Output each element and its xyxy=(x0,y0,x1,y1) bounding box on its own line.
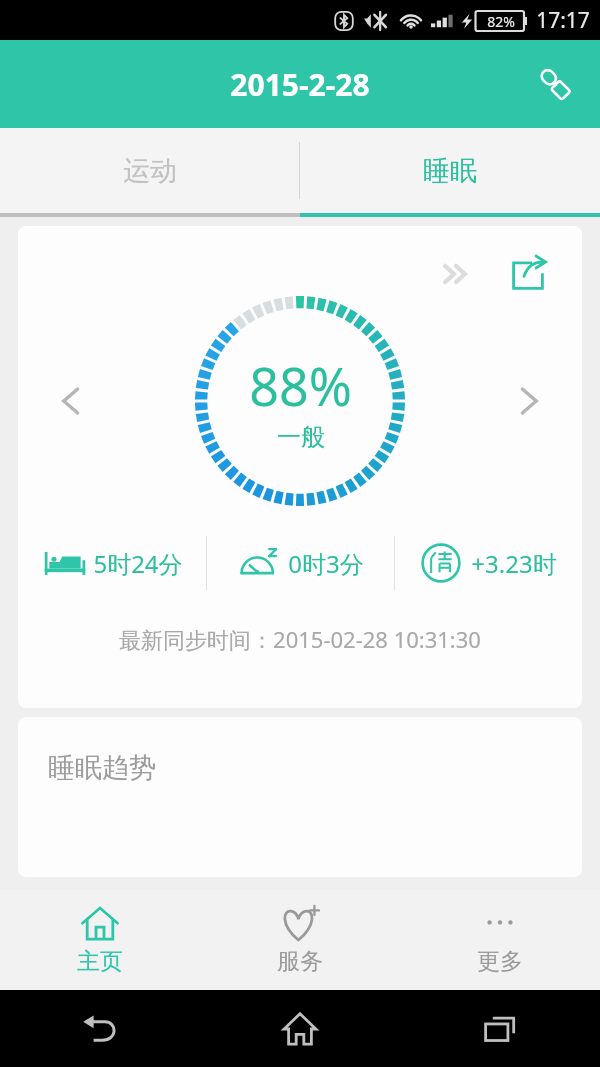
staticText: 88% xyxy=(249,350,352,421)
staticText: 17:17 xyxy=(536,6,590,35)
button[interactable]: 主页 xyxy=(0,890,200,990)
button[interactable]: 更多 xyxy=(400,890,600,990)
button[interactable]: More details xyxy=(428,246,484,302)
staticText: 运动 xyxy=(123,154,177,188)
button[interactable]: Previous day xyxy=(42,372,100,430)
button[interactable]: +3.23时 xyxy=(395,524,582,602)
staticText: 更多 xyxy=(477,947,523,976)
staticText: 一般 xyxy=(277,422,325,452)
button[interactable]: 睡眠趋势 xyxy=(18,717,582,877)
staticText: +3.23时 xyxy=(471,547,557,580)
staticText: 服务 xyxy=(277,947,323,976)
button[interactable]: 服务 xyxy=(200,890,400,990)
button[interactable]: 运动 xyxy=(0,128,299,213)
staticText: 睡眠 xyxy=(423,154,477,188)
staticText: 主页 xyxy=(77,947,123,976)
button[interactable]: Home xyxy=(200,990,400,1067)
staticText: 0时3分 xyxy=(288,547,364,580)
button[interactable]: Share xyxy=(500,246,556,302)
button[interactable]: 5时24分 xyxy=(18,524,206,602)
staticText: 2015-2-28 xyxy=(230,64,370,105)
button[interactable]: Recent apps xyxy=(400,990,600,1067)
staticText: 5时24分 xyxy=(93,547,183,580)
staticText: 82% xyxy=(487,12,515,31)
button[interactable]: Back xyxy=(0,990,200,1067)
button[interactable]: Next day xyxy=(500,372,558,430)
button[interactable]: Link device xyxy=(524,53,586,115)
staticText: 睡眠趋势 xyxy=(48,751,156,785)
staticText: 最新同步时间：2015-02-28 10:31:30 xyxy=(119,624,481,654)
button[interactable]: 睡眠 xyxy=(300,128,600,213)
button[interactable]: 0时3分 xyxy=(207,524,394,602)
